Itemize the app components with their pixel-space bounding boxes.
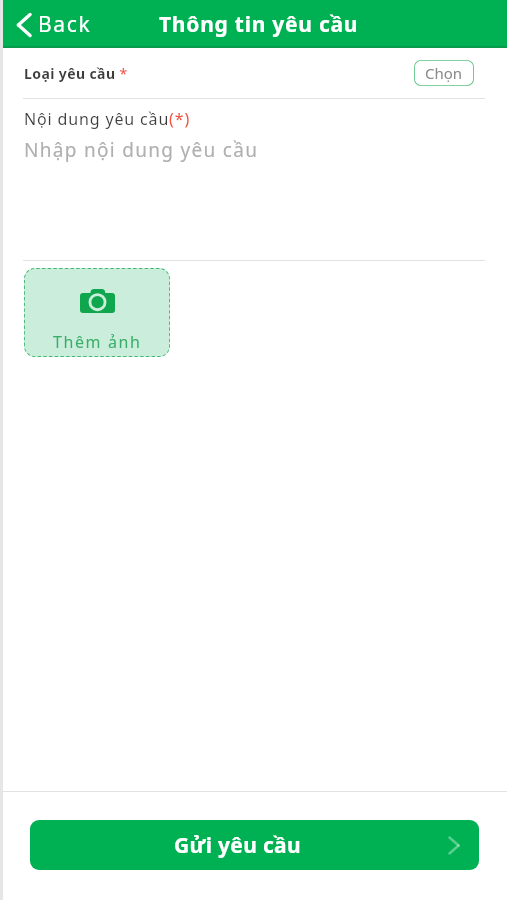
- staticText: Back: [38, 10, 92, 39]
- staticText: Nhập nội dung yêu cầu: [24, 137, 259, 163]
- staticText: Thêm ảnh: [53, 331, 142, 353]
- other: Thêm ảnh: [80, 289, 115, 313]
- button[interactable]: Chọn: [414, 60, 474, 86]
- staticText: Thông tin yêu cầu: [159, 10, 359, 39]
- staticText: Chọn: [425, 63, 463, 83]
- button[interactable]: Back: [3, 4, 102, 45]
- staticText: Loại yêu cầu *: [24, 64, 128, 83]
- button[interactable]: Loại yêu cầu *: [3, 48, 507, 98]
- button[interactable]: Gửi yêu cầu: [30, 820, 479, 870]
- button[interactable]: Thêm ảnh: [24, 268, 170, 357]
- staticText: Nội dung yêu cầu(*): [24, 108, 191, 130]
- staticText: Gửi yêu cầu: [174, 831, 301, 860]
- other: Tiếp tục: [448, 836, 460, 855]
